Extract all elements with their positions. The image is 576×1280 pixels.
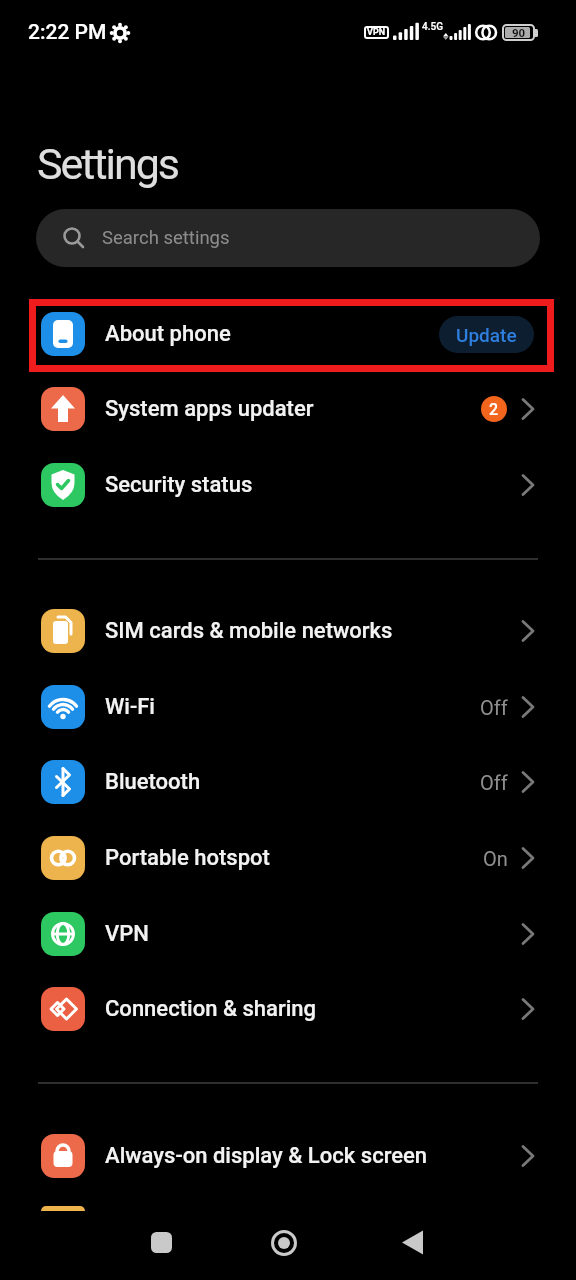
button[interactable] [400, 1230, 425, 1255]
staticText: 2:22 PM [28, 20, 107, 45]
staticText: Portable hotspot [105, 845, 270, 871]
staticText: Settings [37, 139, 179, 189]
staticText: Bluetooth [105, 769, 201, 795]
button[interactable]: About phone [0, 296, 576, 372]
staticText: On [483, 847, 508, 870]
staticText: About phone [105, 321, 231, 347]
button[interactable] [271, 1230, 297, 1256]
staticText: Search settings [102, 227, 230, 249]
staticText: Connection & sharing [105, 996, 316, 1022]
staticText: 90 [512, 26, 526, 39]
button[interactable] [151, 1232, 172, 1253]
staticText: Always-on display & Lock screen [105, 1143, 428, 1169]
button[interactable]: Security status [0, 447, 576, 523]
staticText: 2 [489, 400, 499, 419]
staticText: Security status [105, 472, 253, 498]
button[interactable]: Connection & sharing [0, 971, 576, 1047]
staticText: SIM cards & mobile networks [105, 618, 393, 644]
button[interactable]: Update [439, 316, 534, 353]
staticText: Off [480, 771, 508, 794]
button[interactable]: SIM cards & mobile networks [0, 593, 576, 669]
button[interactable]: Always-on display & Lock screen [0, 1118, 576, 1194]
staticText: Off [480, 696, 508, 719]
button[interactable]: Bluetooth [0, 744, 576, 820]
staticText: VPN [367, 27, 386, 38]
button[interactable]: Search settings [36, 209, 540, 267]
staticText: System apps updater [105, 396, 314, 422]
staticText: Wi-Fi [105, 694, 155, 720]
button[interactable]: Portable hotspot [0, 820, 576, 896]
button[interactable]: VPN [0, 896, 576, 972]
staticText: VPN [105, 921, 149, 947]
button[interactable]: Wi-Fi [0, 669, 576, 745]
staticText: 4.5G [422, 21, 443, 33]
button[interactable]: System apps updater [0, 371, 576, 447]
staticText: Update [456, 324, 517, 346]
